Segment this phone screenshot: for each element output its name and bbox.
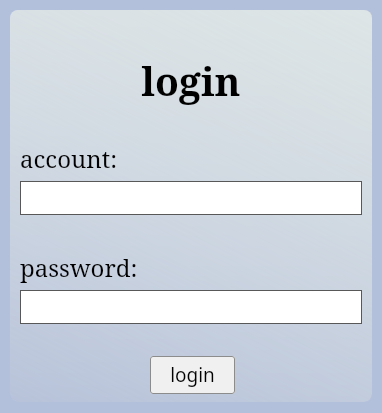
staticText: account: (20, 142, 118, 175)
staticText: login (20, 54, 362, 107)
button[interactable] (20, 290, 362, 324)
button[interactable]: login (150, 356, 235, 394)
staticText: password: (20, 251, 138, 284)
staticText: login (170, 362, 215, 388)
button[interactable] (20, 181, 362, 215)
